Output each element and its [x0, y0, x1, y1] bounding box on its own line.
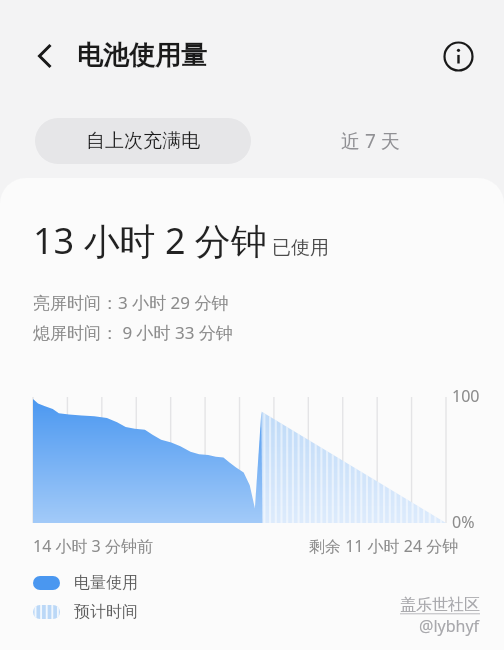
staticText: 电池使用量	[77, 39, 207, 72]
staticText: 已使用	[272, 236, 329, 260]
staticText: 盖乐世社区	[400, 595, 480, 615]
staticText: 近 7 天	[341, 128, 400, 154]
staticText: 剩余 11 小时 24 分钟	[309, 535, 459, 557]
staticText: 电量使用	[74, 573, 138, 593]
button[interactable]: Information	[435, 33, 482, 80]
staticText: 14 小时 3 分钟前	[33, 535, 153, 557]
staticText: @lybhyf	[419, 615, 480, 637]
staticText: 0%	[452, 511, 475, 533]
button[interactable]: 自上次充满电	[35, 118, 251, 164]
button[interactable]: 近 7 天	[280, 118, 460, 164]
staticText: 自上次充满电	[86, 129, 200, 153]
staticText: 100	[452, 385, 480, 407]
button[interactable]: Back	[22, 33, 68, 79]
staticText: 预计时间	[74, 602, 138, 622]
staticText: 熄屏时间： 9 小时 33 分钟	[33, 321, 233, 344]
staticText: 亮屏时间：3 小时 29 分钟	[33, 291, 229, 314]
staticText: 13 小时 2 分钟	[33, 216, 267, 265]
